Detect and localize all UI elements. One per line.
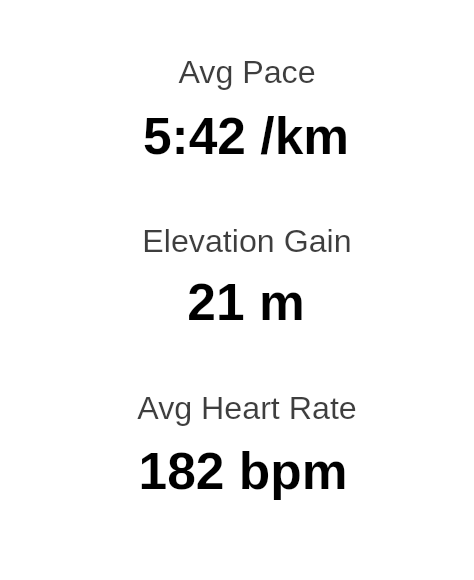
staticText: 5:42 /km bbox=[9, 107, 474, 165]
staticText: Avg Pace bbox=[10, 54, 474, 90]
staticText: 182 bpm bbox=[6, 442, 474, 500]
button[interactable]: Avg Heart Rate bbox=[0, 382, 474, 504]
staticText: Avg Heart Rate bbox=[10, 390, 474, 426]
button[interactable]: Elevation Gain bbox=[0, 214, 474, 336]
staticText: 21 m bbox=[9, 273, 474, 331]
button[interactable]: Avg Pace bbox=[0, 46, 474, 168]
staticText: Elevation Gain bbox=[10, 223, 474, 259]
